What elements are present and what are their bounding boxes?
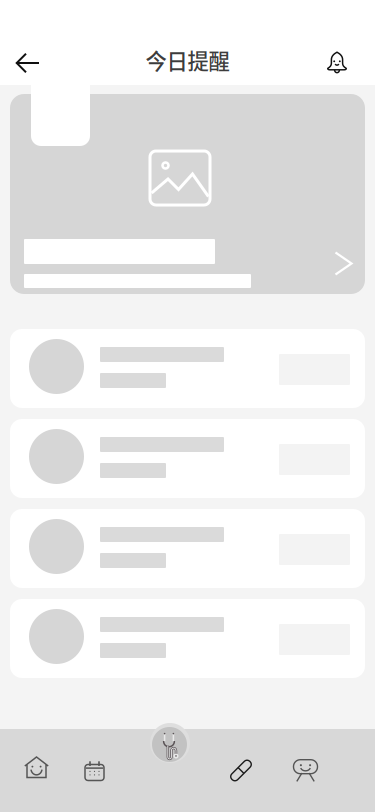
staticText: 今日提醒 [145, 45, 229, 75]
button[interactable]: Home [12, 743, 61, 792]
button[interactable] [10, 599, 365, 678]
button[interactable]: Back [6, 41, 50, 85]
button[interactable] [10, 419, 365, 498]
button[interactable]: Notifications [315, 41, 359, 85]
button[interactable]: Calendar [70, 746, 119, 795]
button[interactable] [10, 329, 365, 408]
button[interactable]: Consult [152, 727, 187, 762]
button[interactable] [10, 94, 365, 294]
button[interactable] [10, 509, 365, 588]
button[interactable]: Medication [218, 746, 267, 795]
button[interactable]: Pet [281, 746, 330, 795]
